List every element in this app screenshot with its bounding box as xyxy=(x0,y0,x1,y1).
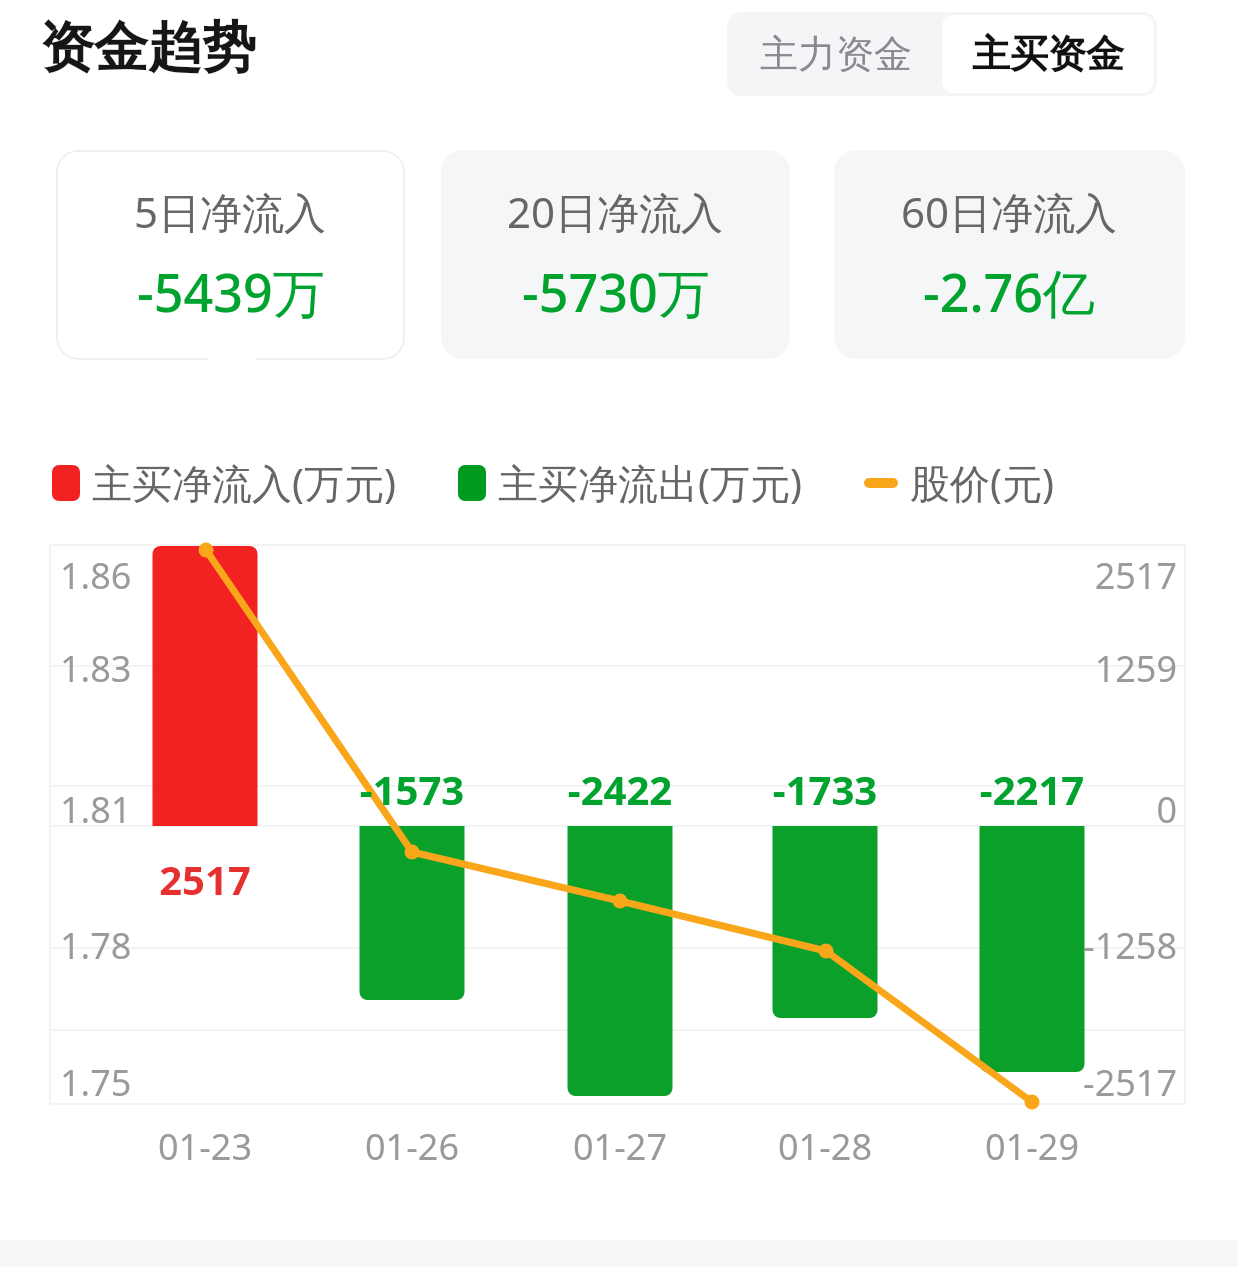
staticText: 主力资金 xyxy=(760,30,912,78)
staticText: -1733 xyxy=(735,762,915,816)
button[interactable]: 5日净流入 xyxy=(56,150,405,360)
staticText: 2517 xyxy=(115,852,295,906)
staticText: -5439万 xyxy=(137,256,325,327)
button[interactable]: 01-23 xyxy=(115,1122,295,1171)
staticText: -1573 xyxy=(322,762,502,816)
staticText: -2217 xyxy=(942,762,1122,816)
staticText: 01-23 xyxy=(115,1122,295,1171)
staticText: -1258 xyxy=(1010,921,1177,970)
staticText: 0 xyxy=(1010,785,1177,834)
staticText: 01-26 xyxy=(322,1122,502,1171)
button[interactable]: 01-26 xyxy=(322,1122,502,1171)
staticText: 1.78 xyxy=(60,921,132,970)
staticText: 主买净流出(万元) xyxy=(498,455,802,510)
button[interactable]: 主力资金 xyxy=(730,15,942,93)
staticText: 01-29 xyxy=(942,1122,1122,1171)
staticText: 1.75 xyxy=(60,1058,132,1107)
staticText: 1.86 xyxy=(60,551,132,600)
staticText: 股价(元) xyxy=(910,455,1054,510)
button[interactable]: 主买资金 xyxy=(942,15,1154,93)
staticText: 资金趋势 xyxy=(40,14,256,82)
button[interactable]: 01-29 xyxy=(942,1122,1122,1171)
button[interactable]: 01-28 xyxy=(735,1122,915,1171)
staticText: 1259 xyxy=(1010,644,1177,693)
staticText: 1.81 xyxy=(60,785,132,834)
staticText: 01-28 xyxy=(735,1122,915,1171)
staticText: 主买资金 xyxy=(972,30,1124,78)
staticText: -2.76亿 xyxy=(923,256,1096,327)
staticText: 1.83 xyxy=(60,644,132,693)
staticText: 20日净流入 xyxy=(507,183,724,240)
staticText: -2422 xyxy=(530,762,710,816)
staticText: 主买净流入(万元) xyxy=(92,455,396,510)
staticText: -5730万 xyxy=(522,256,710,327)
staticText: 2517 xyxy=(1010,551,1177,600)
button[interactable]: 01-27 xyxy=(530,1122,710,1171)
staticText: -2517 xyxy=(1010,1058,1177,1107)
button[interactable]: 60日净流入 xyxy=(834,150,1185,359)
staticText: 01-27 xyxy=(530,1122,710,1171)
staticText: 5日净流入 xyxy=(134,183,327,240)
button[interactable]: 20日净流入 xyxy=(441,150,790,359)
staticText: 60日净流入 xyxy=(901,183,1118,240)
